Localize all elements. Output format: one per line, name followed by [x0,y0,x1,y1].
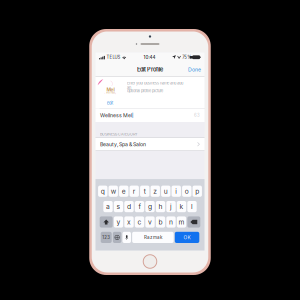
button[interactable]: Dictate [122,232,131,243]
staticText: v [148,218,152,226]
staticText: x [127,218,131,226]
button[interactable]: OK [175,232,199,243]
staticText: Mel [106,87,114,93]
button[interactable]: 123 [101,232,112,243]
button[interactable]: Beauty, Spa & Salon [95,138,204,150]
button[interactable]: h [156,201,165,212]
staticText: g [148,203,152,211]
staticText: a [106,203,110,211]
staticText: o [185,187,189,195]
button[interactable]: l [187,201,197,212]
staticText: optional profile picture [127,88,163,93]
button[interactable]: m [177,216,186,228]
staticText: i [175,187,177,195]
staticText: 75% [182,55,191,60]
button[interactable]: b [156,216,165,228]
staticText: r [133,187,136,195]
staticText: t [144,187,146,195]
staticText: OK [184,234,191,240]
staticText: 123 [102,235,110,240]
staticText: TELUS [106,55,120,60]
button[interactable]: r [130,186,139,197]
staticText: s [116,203,120,211]
button[interactable]: t [140,186,149,197]
button[interactable]: Done [184,64,204,75]
staticText: d [127,203,131,211]
button[interactable]: x [124,216,134,228]
staticText: p [195,187,199,195]
button[interactable]: q [98,186,107,197]
button[interactable]: Edit [106,100,114,106]
button[interactable]: f [135,201,144,212]
staticText: c [137,218,141,226]
staticText: h [158,203,162,211]
staticText: Beauty, Spa & Salon [100,141,146,147]
button[interactable]: e [119,186,128,197]
staticText: y [116,218,120,226]
button[interactable]: k [177,201,186,212]
button[interactable]: a [103,201,113,212]
staticText: Edit [107,101,113,105]
button[interactable]: p [193,186,202,197]
button[interactable]: Razmak [132,232,174,243]
staticText: Enter your business name and add an [127,81,183,90]
button[interactable]: j [166,201,176,212]
staticText: k [179,203,183,211]
button[interactable]: i [172,186,181,197]
button[interactable]: s [114,201,123,212]
button[interactable]: v [145,216,155,228]
staticText: wellness [106,91,115,94]
button[interactable]: u [161,186,170,197]
staticText: m [178,218,184,226]
staticText: Edit Profile [137,66,163,73]
button[interactable]: n [166,216,176,228]
staticText: Done [188,66,201,73]
staticText: z [153,187,157,195]
button[interactable]: Next keyboard [113,232,121,243]
button[interactable]: Delete [187,216,200,228]
staticText: u [164,187,168,195]
staticText: e [122,187,126,195]
staticText: b [158,218,162,226]
button[interactable]: d [124,201,134,212]
staticText: j [170,203,172,211]
button[interactable]: o [182,186,191,197]
staticText: Razmak [144,235,162,240]
staticText: 10:44 [143,54,155,60]
button[interactable]: g [145,201,155,212]
staticText: f [138,203,140,211]
staticText: w [111,187,116,195]
staticText: 63 [194,113,200,118]
button[interactable]: y [114,216,123,228]
staticText: BUSINESS CATEGORY [100,132,138,136]
button[interactable]: w [109,186,118,197]
button[interactable]: z [151,186,160,197]
staticText: n [169,218,173,226]
button[interactable]: Shift [100,216,113,228]
staticText: Wellness Mel [100,112,132,118]
button[interactable]: c [135,216,144,228]
staticText: l [191,203,193,211]
staticText: q [101,187,105,195]
